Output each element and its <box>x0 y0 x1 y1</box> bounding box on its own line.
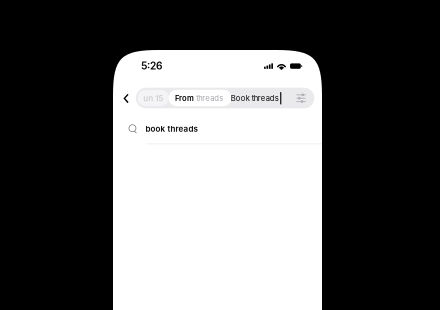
button[interactable]: From <box>169 90 232 106</box>
button[interactable]: Back <box>118 88 135 108</box>
staticText: un 15 <box>143 93 163 103</box>
staticText: 5:26 <box>141 60 162 72</box>
staticText: From <box>175 94 194 103</box>
button[interactable]: Jun 15 token <box>138 90 169 106</box>
button[interactable]: Search filters <box>293 90 309 106</box>
button[interactable]: Search field, Book threads <box>136 88 314 108</box>
staticText: threads <box>196 94 223 103</box>
staticText: book threads <box>146 124 198 134</box>
staticText: Book threads <box>231 94 279 103</box>
button[interactable]: book threads <box>113 114 322 144</box>
